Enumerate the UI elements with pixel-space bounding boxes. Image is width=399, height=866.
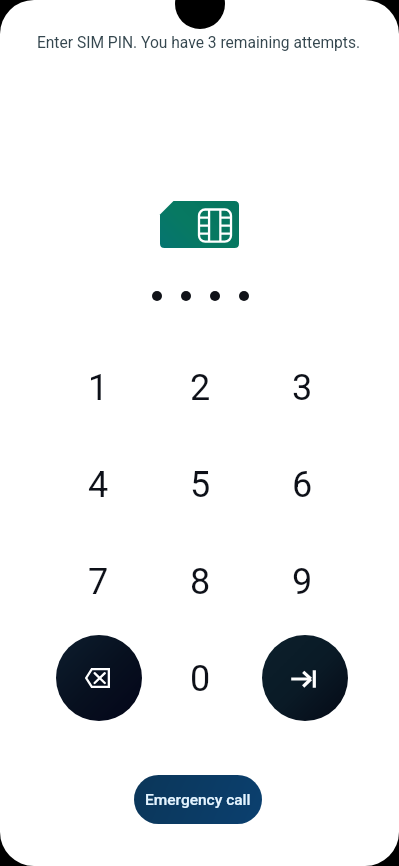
staticText: 9 [292, 561, 313, 603]
staticText: 1 [88, 367, 109, 409]
button[interactable]: 7 [47, 533, 149, 630]
staticText: Emergency call [145, 791, 251, 809]
staticText: 6 [292, 464, 313, 506]
staticText: 7 [88, 561, 109, 603]
staticText: 8 [190, 561, 211, 603]
button[interactable]: 5 [149, 436, 251, 533]
button[interactable]: Backspace [56, 635, 142, 721]
staticText: 0 [190, 658, 211, 700]
button[interactable]: Enter [262, 635, 348, 721]
button[interactable]: 2 [149, 339, 251, 436]
button[interactable]: 4 [47, 436, 149, 533]
button[interactable]: 6 [251, 436, 353, 533]
button[interactable]: 1 [47, 339, 149, 436]
staticText: 4 [88, 464, 109, 506]
staticText: 2 [190, 367, 211, 409]
button[interactable]: 0 [149, 630, 251, 727]
button[interactable]: 3 [251, 339, 353, 436]
button[interactable]: Emergency call [134, 775, 262, 824]
button[interactable]: 8 [149, 533, 251, 630]
staticText: 3 [292, 367, 313, 409]
button[interactable]: 9 [251, 533, 353, 630]
staticText: 5 [190, 464, 211, 506]
staticText: Enter SIM PIN. You have 3 remaining atte… [0, 34, 398, 52]
